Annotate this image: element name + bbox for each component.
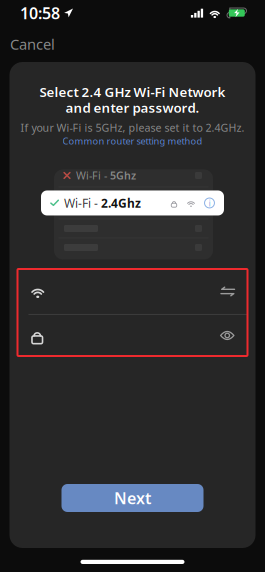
staticText: 5Ghz [110,168,136,183]
button[interactable]: Common router setting method [62,133,202,149]
staticText: 10:58 [20,2,60,24]
button[interactable]: Next [61,484,203,512]
staticText: Next [114,487,151,509]
staticText: Wi-Fi - [64,195,101,211]
staticText: Cancel [10,34,55,54]
staticText: If your Wi-Fi is 5GHz, please set it to … [20,120,244,135]
staticText: and enter password. [65,99,199,116]
staticText: Wi-Fi - [76,168,110,183]
button[interactable]: Cancel [0,28,67,60]
staticText: Common router setting method [62,135,202,147]
staticText: 2.4Ghz [101,195,141,211]
staticText: Select 2.4 GHz Wi-Fi Network [39,83,225,101]
staticText: i [208,197,210,209]
